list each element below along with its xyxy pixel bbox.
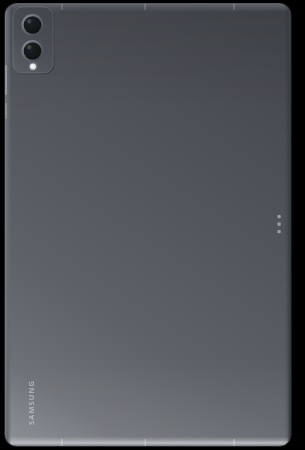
button[interactable]: Samsung Galaxy Tab rear view (0, 0, 305, 450)
